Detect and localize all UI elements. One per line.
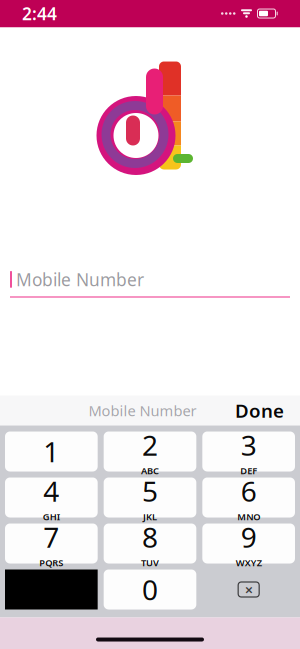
staticText: GHI bbox=[43, 510, 60, 523]
staticText: 4 bbox=[43, 472, 59, 509]
staticText: TUV bbox=[141, 556, 159, 569]
staticText: ABC bbox=[141, 464, 159, 477]
staticText: Mobile Number bbox=[16, 268, 144, 291]
button[interactable]: 6 bbox=[202, 477, 295, 517]
staticText: 3 bbox=[241, 426, 257, 463]
staticText: 0 bbox=[142, 571, 158, 608]
staticText: 1 bbox=[43, 433, 59, 470]
button[interactable]: 8 bbox=[104, 523, 196, 563]
staticText: 2 bbox=[142, 426, 158, 463]
staticText: 6 bbox=[241, 472, 257, 509]
button[interactable]: 5 bbox=[104, 477, 196, 517]
button[interactable]: 4 bbox=[5, 477, 98, 517]
staticText: DEF bbox=[240, 464, 257, 477]
staticText: Done bbox=[235, 398, 284, 423]
button[interactable]: 7 bbox=[5, 523, 98, 563]
staticText: JKL bbox=[143, 510, 157, 523]
staticText: 7 bbox=[43, 518, 59, 555]
button[interactable]: 2 bbox=[104, 431, 196, 471]
staticText: 9 bbox=[241, 518, 257, 555]
button[interactable]: 0 bbox=[104, 569, 196, 609]
staticText: MNO bbox=[237, 510, 260, 523]
staticText: 5 bbox=[142, 472, 158, 509]
staticText: PQRS bbox=[39, 556, 63, 569]
staticText: Mobile Number bbox=[88, 401, 196, 420]
staticText: × bbox=[245, 580, 253, 599]
staticText: 8 bbox=[142, 518, 158, 555]
button[interactable]: 1 bbox=[5, 431, 98, 471]
staticText: 2:44 bbox=[22, 2, 57, 25]
button[interactable]: Done bbox=[225, 392, 294, 429]
button[interactable]: 3 bbox=[202, 431, 295, 471]
button[interactable]: Delete bbox=[202, 569, 295, 609]
staticText: WXYZ bbox=[236, 556, 262, 569]
button[interactable]: 9 bbox=[202, 523, 295, 563]
